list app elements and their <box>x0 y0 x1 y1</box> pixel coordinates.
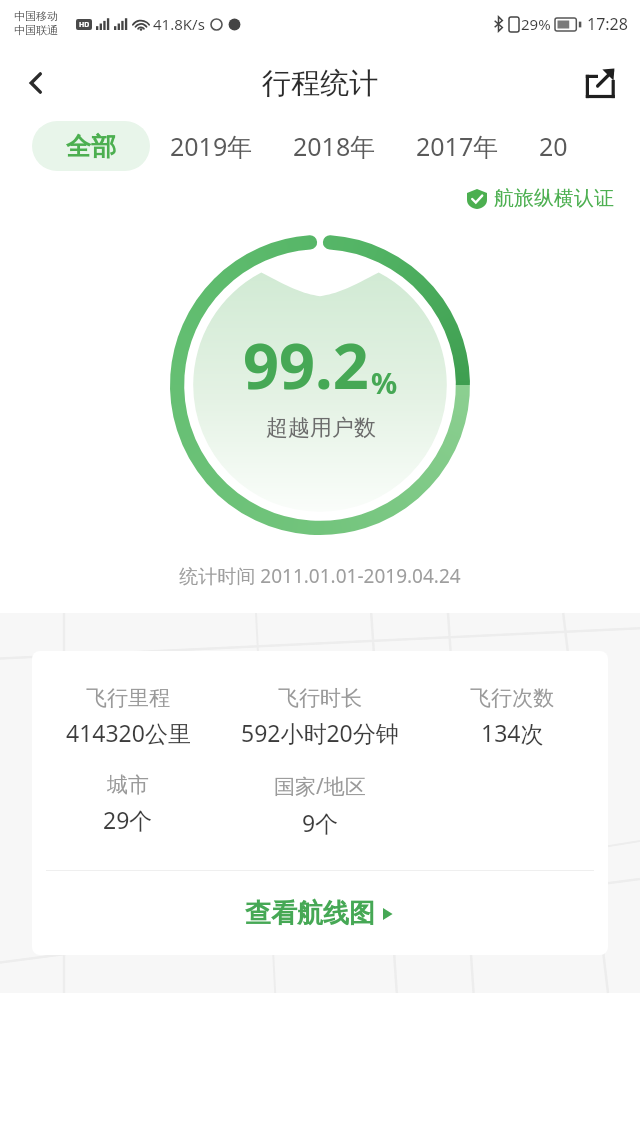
staticText: 行程统计 <box>262 65 378 102</box>
staticText: 飞行里程 <box>86 685 170 711</box>
staticText: 9个 <box>302 807 339 838</box>
staticText: HD <box>79 20 90 30</box>
staticText: 统计时间 2011.01.01-2019.04.24 <box>0 563 640 589</box>
button[interactable]: 2019年 <box>170 121 253 171</box>
staticText: 99.2 <box>243 322 369 408</box>
staticText: 414320公里 <box>66 717 191 748</box>
button[interactable]: 飞行里程 <box>32 651 608 955</box>
staticText: 查看航线图 <box>245 897 375 930</box>
staticText: 29个 <box>103 804 153 835</box>
staticText: % <box>371 363 398 402</box>
staticText: 41.8K/s <box>153 14 205 34</box>
staticText: 20 <box>539 129 568 163</box>
button[interactable]: 查看航线图 <box>32 871 608 955</box>
staticText: 592小时20分钟 <box>241 717 399 748</box>
button[interactable]: 2017年 <box>416 121 499 171</box>
staticText: 2018年 <box>293 129 376 163</box>
staticText: 中国联通 <box>14 23 58 37</box>
staticText: 17:28 <box>587 13 628 35</box>
staticText: 134次 <box>481 717 544 748</box>
button[interactable]: Back <box>8 55 64 111</box>
staticText: 2017年 <box>416 129 499 163</box>
staticText: 飞行时长 <box>278 685 362 711</box>
staticText: 2019年 <box>170 129 253 163</box>
staticText: 飞行次数 <box>470 685 554 711</box>
staticText: 29% <box>521 14 551 34</box>
button[interactable]: 2018年 <box>293 121 376 171</box>
staticText: 国家/地区 <box>274 772 366 801</box>
staticText: 城市 <box>107 772 149 798</box>
staticText: 航旅纵横认证 <box>494 186 614 211</box>
button[interactable]: 20 <box>539 121 568 171</box>
staticText: 超越用户数 <box>266 414 376 442</box>
button[interactable]: Share <box>572 55 628 111</box>
button[interactable]: 全部 <box>32 121 150 171</box>
staticText: 中国移动 <box>14 9 58 23</box>
staticText: 全部 <box>66 131 116 162</box>
